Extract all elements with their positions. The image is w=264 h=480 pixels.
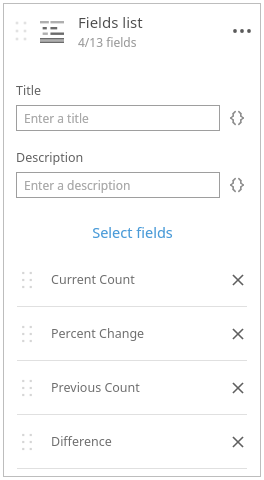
button[interactable]: Remove Current Count <box>221 263 255 297</box>
button[interactable]: Enter a title <box>16 105 220 131</box>
button[interactable]: Remove Percent Change <box>221 317 255 351</box>
button[interactable]: Remove Previous Count <box>221 371 255 405</box>
staticText: Enter a description <box>24 177 131 193</box>
button[interactable]: Current Count <box>3 253 261 306</box>
button[interactable]: Select fields <box>3 218 261 246</box>
staticText: Select fields <box>92 222 173 242</box>
button[interactable]: Expression <box>220 172 254 198</box>
button[interactable]: Difference <box>3 415 261 468</box>
button[interactable]: Enter a description <box>16 172 220 198</box>
button[interactable]: Reorder <box>7 17 35 45</box>
button[interactable]: Expression <box>220 105 254 131</box>
staticText: Difference <box>51 433 221 450</box>
staticText: Percent Change <box>51 325 221 342</box>
staticText: 4/13 fields <box>78 34 137 50</box>
staticText: Fields list <box>78 12 143 32</box>
button[interactable]: Remove Difference <box>221 425 255 459</box>
button[interactable]: Previous Count <box>3 361 261 414</box>
button[interactable]: More options <box>225 14 259 48</box>
staticText: Title <box>16 82 41 99</box>
staticText: Current Count <box>51 271 221 288</box>
button[interactable]: Percent Change <box>3 307 261 360</box>
staticText: Previous Count <box>51 379 221 396</box>
staticText: Enter a title <box>24 110 89 126</box>
staticText: Description <box>16 149 84 166</box>
